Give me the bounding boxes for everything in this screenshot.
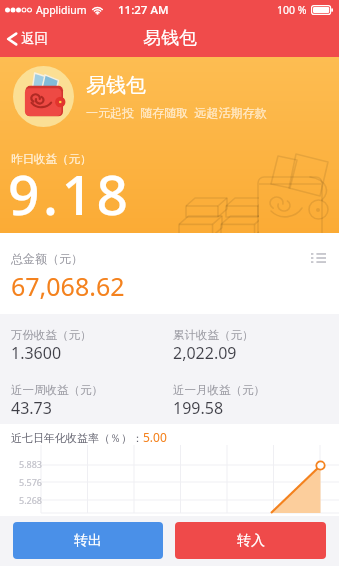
button[interactable]: 近一周收益（元） <box>0 369 162 424</box>
staticText: 易钱包 <box>143 27 197 50</box>
staticText: 1.3600 <box>11 342 62 364</box>
staticText: 11:27 AM <box>118 2 169 18</box>
button[interactable]: 转入 <box>175 522 326 559</box>
staticText: 近一周收益（元） <box>11 383 103 397</box>
staticText: Applidium <box>36 3 87 17</box>
staticText: 转入 <box>237 532 265 550</box>
staticText: 转出 <box>74 532 102 550</box>
staticText: 5.883 <box>19 458 43 470</box>
staticText: 43.73 <box>11 397 52 419</box>
staticText: 累计收益（元） <box>173 328 254 342</box>
staticText: 总金额（元） <box>11 251 83 266</box>
staticText: 100 % <box>277 3 307 17</box>
staticText: 199.58 <box>173 397 224 419</box>
button[interactable]: 返回 <box>0 24 60 53</box>
staticText: 2,022.09 <box>173 342 237 364</box>
staticText: 5.00 <box>143 429 167 445</box>
staticText: 一元起投 随存随取 远超活期存款 <box>86 104 267 120</box>
staticText: 近七日年化收益率（％）： <box>11 431 143 445</box>
button[interactable]: 累计收益（元） <box>162 314 339 369</box>
staticText: 返回 <box>21 30 48 47</box>
button[interactable]: 交易明细 <box>304 246 333 270</box>
staticText: 67,068.62 <box>11 269 125 303</box>
staticText: 近一月收益（元） <box>173 383 265 397</box>
staticText: 昨日收益（元） <box>11 152 92 166</box>
button[interactable]: 近一月收益（元） <box>162 369 339 424</box>
staticText: 5.268 <box>19 494 43 506</box>
button[interactable]: 转出 <box>13 522 163 559</box>
staticText: 5.576 <box>19 476 43 488</box>
staticText: 易钱包 <box>86 73 146 98</box>
staticText: 9.18 <box>8 156 132 231</box>
staticText: 万份收益（元） <box>11 328 92 342</box>
button[interactable]: 万份收益（元） <box>0 314 162 369</box>
